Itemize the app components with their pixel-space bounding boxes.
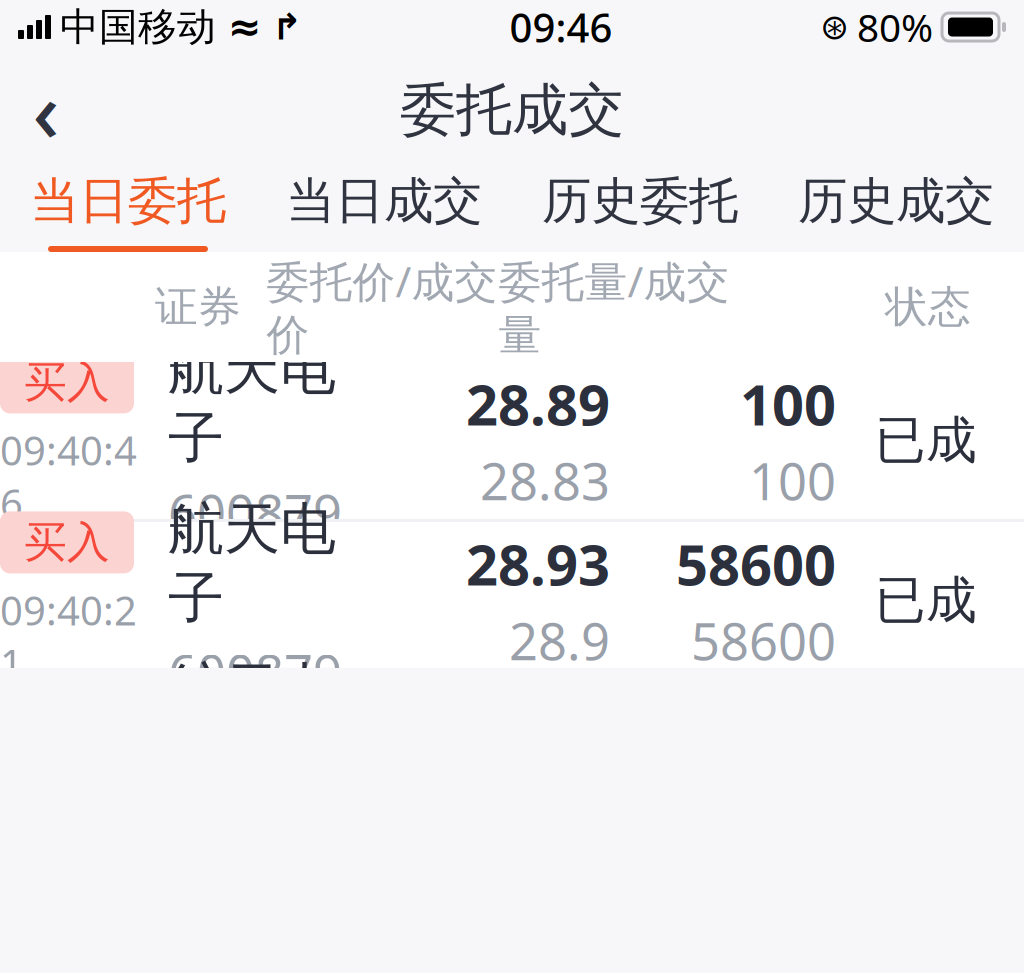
staticText: 100 <box>740 367 836 441</box>
button[interactable]: 当日成交 <box>256 156 512 252</box>
staticText: 状态 <box>885 281 971 333</box>
staticText: 28.89 <box>466 367 610 441</box>
staticText: 当日成交 <box>286 171 482 231</box>
button[interactable]: 历史委托 <box>512 156 768 252</box>
staticText: 买入 <box>24 516 110 569</box>
staticText: 证券 <box>155 281 241 333</box>
staticText: 28.83 <box>480 447 610 514</box>
staticText: ≈ <box>228 4 262 50</box>
staticText: 航天电子 <box>168 655 336 793</box>
button[interactable]: 历史成交 <box>768 156 1024 252</box>
button[interactable]: 当日委托 <box>0 156 256 252</box>
staticText: 委托价/成交价 <box>266 252 497 362</box>
staticText: 委托量/成交量 <box>498 252 729 362</box>
staticText: 航天电子 <box>168 335 336 473</box>
staticText: 09:40:21 <box>0 583 137 690</box>
staticText: ‹ <box>32 55 59 165</box>
staticText: 100 <box>749 447 836 514</box>
staticText: 航天电子 <box>168 495 336 633</box>
staticText: 28.9 <box>509 607 610 674</box>
button[interactable]: 买入 <box>0 362 1024 522</box>
staticText: ⊛ <box>820 7 849 47</box>
staticText: 80% <box>857 1 933 53</box>
staticText: 600879 <box>168 479 342 546</box>
staticText: ↱ <box>272 7 302 47</box>
staticText: 中国移动 <box>60 3 216 51</box>
staticText: 58600 <box>691 607 836 674</box>
staticText: 已成 <box>875 569 977 632</box>
button[interactable]: 返回 <box>0 64 92 156</box>
staticText: 28.93 <box>466 527 610 601</box>
staticText: 历史成交 <box>798 171 994 231</box>
staticText: 600879 <box>168 639 342 706</box>
staticText: 09:40:46 <box>0 423 137 530</box>
staticText: 09:46 <box>509 0 612 53</box>
staticText: 已成 <box>875 409 977 472</box>
staticText: 委托成交 <box>400 76 624 144</box>
staticText: 58600 <box>676 527 836 601</box>
staticText: 买入 <box>24 356 110 409</box>
staticText: 历史委托 <box>542 171 738 231</box>
staticText: 当日委托 <box>30 171 226 231</box>
button[interactable]: 买入 <box>0 522 1024 682</box>
